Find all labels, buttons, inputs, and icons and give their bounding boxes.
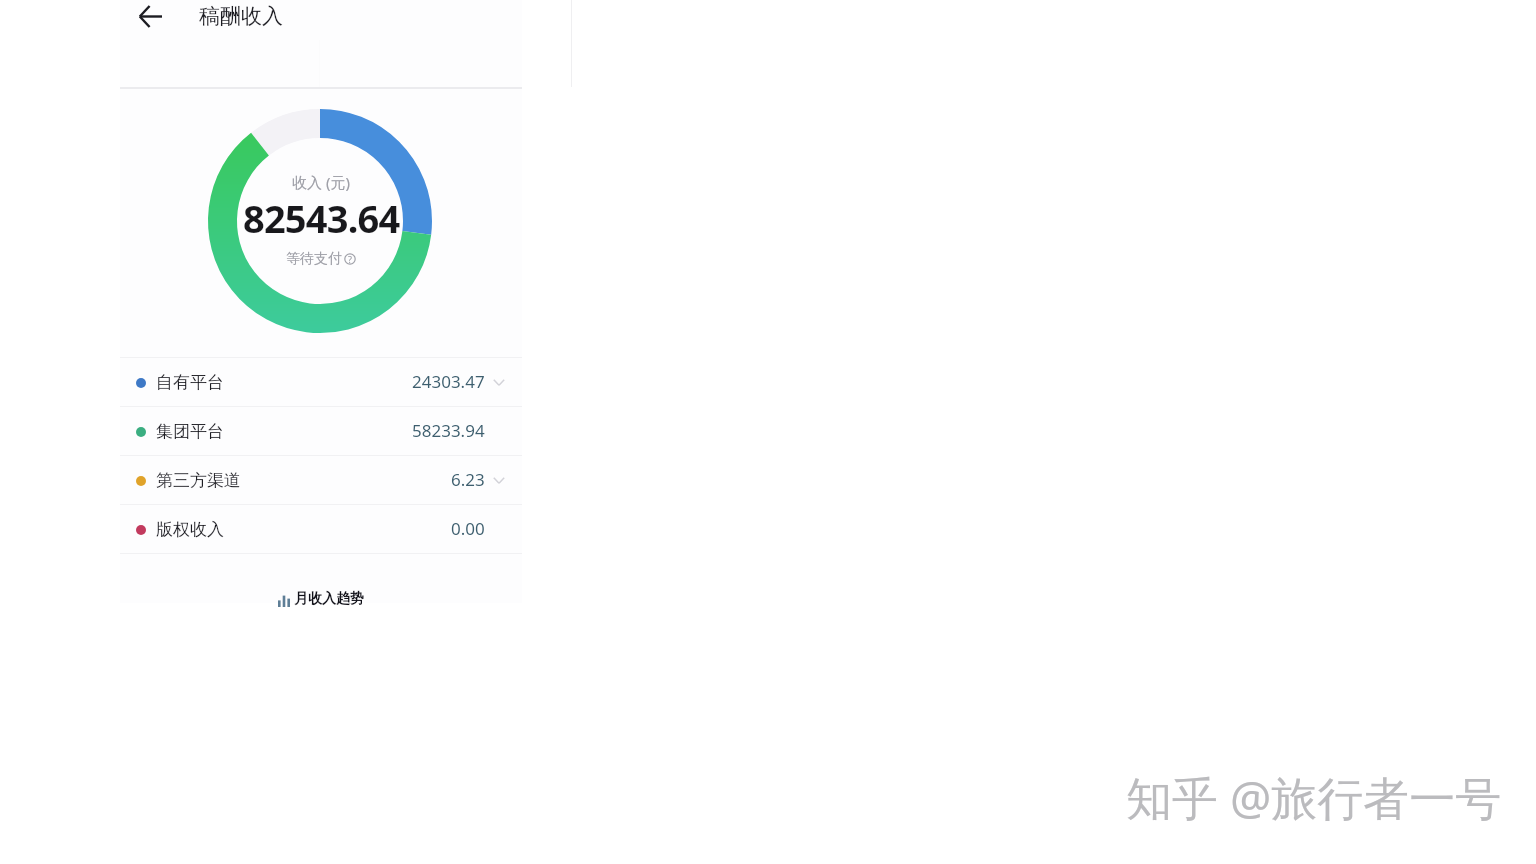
staticText: ? [348,253,352,265]
staticText: 24303.47 [412,370,485,393]
button[interactable]: 月收入趋势 [120,554,522,602]
staticText: 6.23 [451,468,485,491]
staticText: 0.00 [451,517,485,540]
staticText: 稿酬收入 [199,3,283,29]
staticText: 自有平台 [156,372,224,393]
staticText: 82543.64 [243,192,400,244]
staticText: 集团平台 [156,421,224,442]
button[interactable]: 等待支付 [286,250,356,268]
button[interactable]: 集团平台 [120,407,522,455]
other: About pending payment [344,253,356,265]
button[interactable]: 第三方渠道 [120,456,522,504]
staticText: 知乎 @旅行者一号 [1126,766,1502,829]
staticText: 月收入趋势 [294,590,364,608]
button[interactable]: Back [123,0,177,33]
staticText: 等待支付 [286,250,342,268]
staticText: 第三方渠道 [156,470,241,491]
staticText: 收入 (元) [292,172,350,192]
staticText: 版权收入 [156,519,224,540]
staticText: 58233.94 [412,419,485,442]
button[interactable]: 自有平台 [120,358,522,406]
button[interactable]: 版权收入 [120,505,522,553]
